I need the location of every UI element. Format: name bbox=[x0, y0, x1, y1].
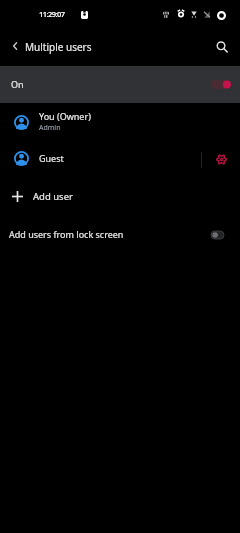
button[interactable]: Back bbox=[1, 32, 29, 60]
staticText: 11:29:07 bbox=[39, 9, 65, 19]
staticText: Add users from lock screen bbox=[9, 228, 124, 240]
staticText: Add user bbox=[33, 190, 73, 203]
staticText: On bbox=[11, 78, 24, 90]
button[interactable]: Guest settings bbox=[212, 150, 230, 168]
button[interactable]: You (Owner) bbox=[0, 102, 240, 140]
button[interactable]: Add users from lock screen bbox=[0, 216, 240, 254]
staticText: Guest bbox=[39, 152, 64, 164]
button[interactable]: Add user bbox=[0, 178, 240, 216]
button[interactable]: Search bbox=[207, 32, 236, 61]
staticText: Admin bbox=[39, 123, 61, 133]
button[interactable]: Guest bbox=[0, 140, 240, 178]
staticText: Multiple users bbox=[25, 40, 92, 54]
staticText: You (Owner) bbox=[39, 110, 91, 122]
button[interactable]: On bbox=[0, 66, 240, 103]
